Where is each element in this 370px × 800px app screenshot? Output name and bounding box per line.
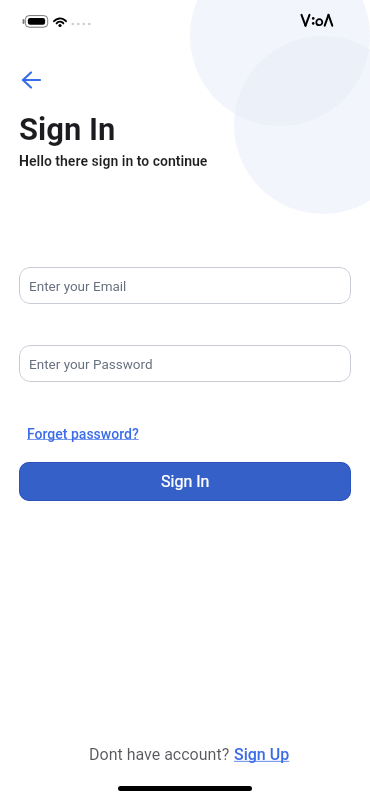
staticText: Enter your Email bbox=[29, 278, 127, 294]
button[interactable]: Forget password? bbox=[27, 426, 139, 442]
staticText: Sign Up bbox=[234, 745, 290, 764]
button[interactable]: Enter your Password bbox=[19, 345, 351, 382]
staticText: Forget password? bbox=[27, 426, 139, 442]
button[interactable]: Sign In bbox=[19, 462, 351, 501]
staticText: Dont have account? bbox=[89, 745, 234, 764]
staticText: Hello there sign in to continue bbox=[19, 153, 208, 169]
button[interactable]: Sign Up bbox=[234, 745, 290, 764]
staticText: Sign In bbox=[19, 111, 116, 147]
button[interactable]: Enter your Email bbox=[19, 267, 351, 304]
staticText: Sign In bbox=[161, 472, 210, 491]
button[interactable] bbox=[15, 64, 47, 96]
staticText: Enter your Password bbox=[29, 356, 153, 372]
